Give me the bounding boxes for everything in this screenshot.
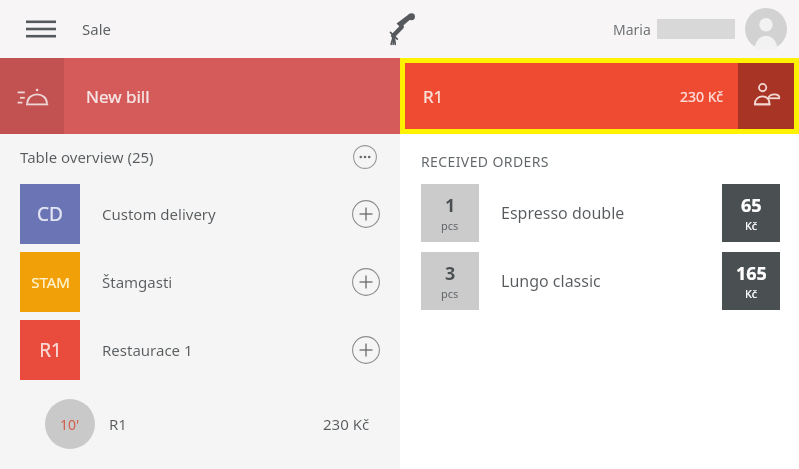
staticText: pcs [441,286,459,301]
staticText: 10' [60,415,80,434]
button[interactable]: Add Štamgasti [346,262,386,302]
staticText: 230 Kč [680,87,724,106]
button[interactable]: 1 [400,183,799,243]
button[interactable]: R1 [405,63,738,129]
staticText: pcs [441,218,459,233]
staticText: R1 [423,85,444,108]
button[interactable]: Maria [613,8,787,50]
staticText: 3 [445,261,456,286]
button[interactable]: 3 [400,251,799,311]
staticText: Kč [745,286,758,301]
staticText: CD [37,201,63,227]
staticText: Lungo classic [501,270,601,292]
staticText: Maria [613,20,651,39]
staticText: Table overview (25) [20,147,154,167]
button[interactable]: STAM [0,248,400,316]
staticText: New bill [86,85,150,108]
staticText: 165 [736,261,767,286]
button[interactable]: Waiter [738,63,794,129]
staticText: STAM [31,272,70,292]
staticText: R1 [39,337,62,363]
staticText: 65 [741,193,762,218]
staticText: Štamgasti [102,272,173,292]
staticText: Custom delivery [102,204,216,224]
button[interactable]: More options [348,140,382,174]
staticText: Kč [745,218,758,233]
staticText: R1 [109,414,127,434]
staticText: RECEIVED ORDERS [421,152,549,171]
button[interactable]: CD [0,180,400,248]
staticText: Sale [82,19,111,39]
button[interactable]: Menu [14,2,68,56]
staticText: Restaurace 1 [102,340,193,360]
staticText: 1 [445,193,456,218]
staticText: Espresso double [501,202,625,224]
button[interactable]: Add Custom delivery [346,194,386,234]
staticText: 230 Kč [323,414,370,434]
button[interactable]: 10' [0,396,400,452]
button[interactable]: Restaurant [372,1,428,57]
button[interactable]: Add Restaurace 1 [346,330,386,370]
button[interactable]: R1 [0,316,400,384]
button[interactable]: New bill [0,58,400,134]
